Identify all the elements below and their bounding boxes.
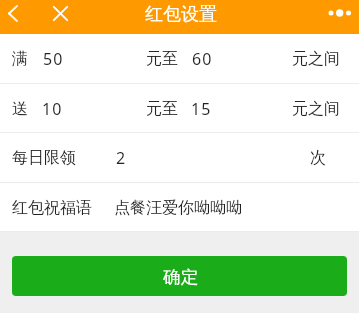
staticText: 红包祝福语 <box>12 198 92 218</box>
staticText: 元至 <box>146 49 178 69</box>
button[interactable]: 红包祝福语 <box>0 183 359 232</box>
staticText: 点餐汪爱你呦呦呦 <box>114 198 242 218</box>
button[interactable]: 满 <box>0 34 359 84</box>
staticText: 每日限领 <box>12 148 76 168</box>
staticText: 确定 <box>163 266 198 288</box>
button[interactable]: 确定 <box>12 256 347 296</box>
button[interactable]: Back <box>0 0 26 26</box>
button[interactable]: More options <box>321 0 357 26</box>
staticText: 15 <box>191 98 212 120</box>
staticText: 50 <box>43 48 64 70</box>
staticText: 元之间 <box>292 99 340 119</box>
button[interactable]: 送 <box>0 84 359 133</box>
staticText: 元之间 <box>292 49 340 69</box>
button[interactable]: 每日限领 <box>0 133 359 183</box>
staticText: 10 <box>42 98 63 120</box>
staticText: 次 <box>310 148 326 168</box>
staticText: 2 <box>116 147 127 169</box>
staticText: 红包设置 <box>145 3 217 26</box>
staticText: 送 <box>12 99 28 119</box>
staticText: 元至 <box>146 99 178 119</box>
staticText: 满 <box>12 49 28 69</box>
button[interactable]: Close <box>47 0 73 26</box>
staticText: 60 <box>192 48 213 70</box>
